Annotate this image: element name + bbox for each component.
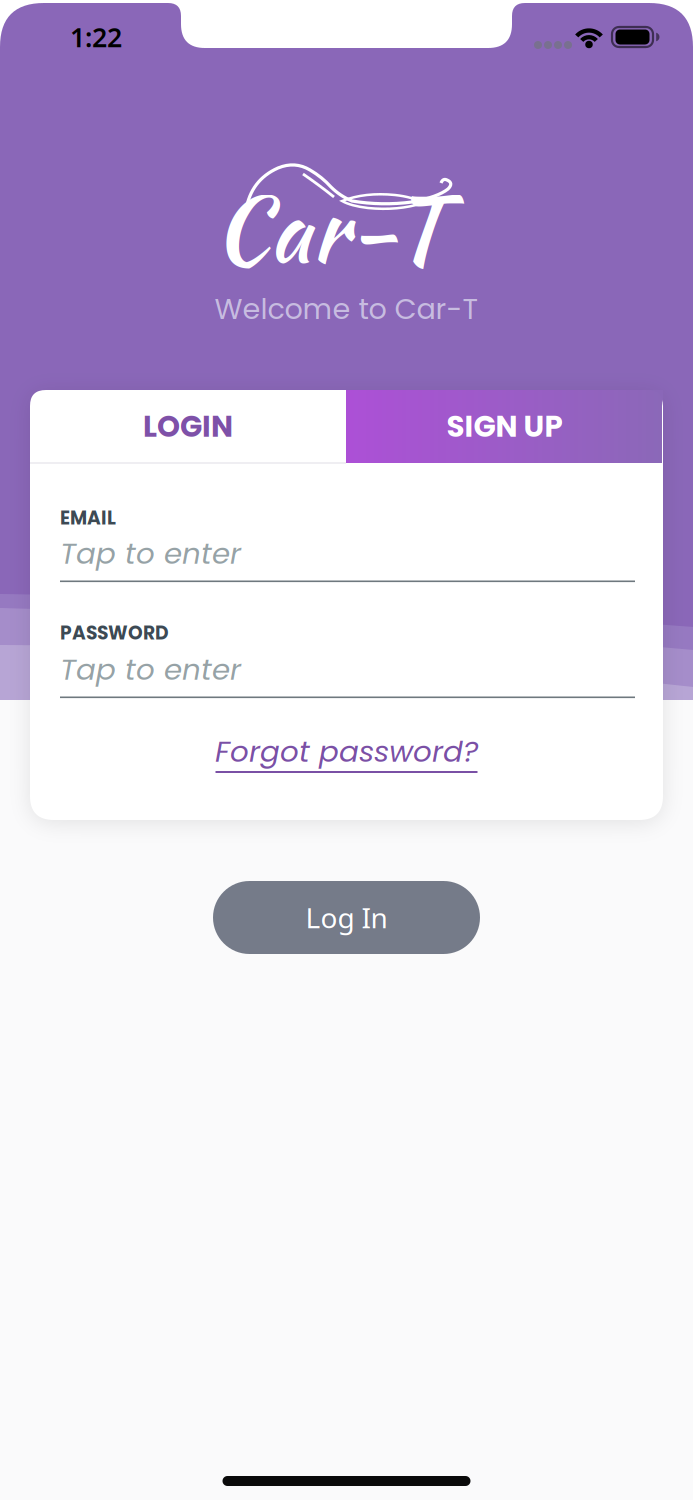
staticText: Log In [305,899,387,936]
staticText: LOGIN [143,406,233,447]
button[interactable]: SIGN UP [346,390,663,463]
button[interactable]: LOGIN [30,390,346,463]
staticText: SIGN UP [446,406,562,447]
staticText: EMAIL [60,505,116,531]
staticText: 1:22 [70,19,122,55]
staticText: Welcome to Car-T [214,289,478,329]
staticText: Tap to enter [60,533,241,574]
button[interactable]: Tap to enter [60,654,635,704]
staticText: Forgot password? [215,731,478,772]
button[interactable]: Log In [213,881,480,954]
staticText: Car-T [213,163,444,295]
staticText: PASSWORD [60,620,169,646]
staticText: Tap to enter [60,649,241,690]
button[interactable]: Forgot password? [206,735,486,781]
button[interactable]: Tap to enter [60,538,635,588]
